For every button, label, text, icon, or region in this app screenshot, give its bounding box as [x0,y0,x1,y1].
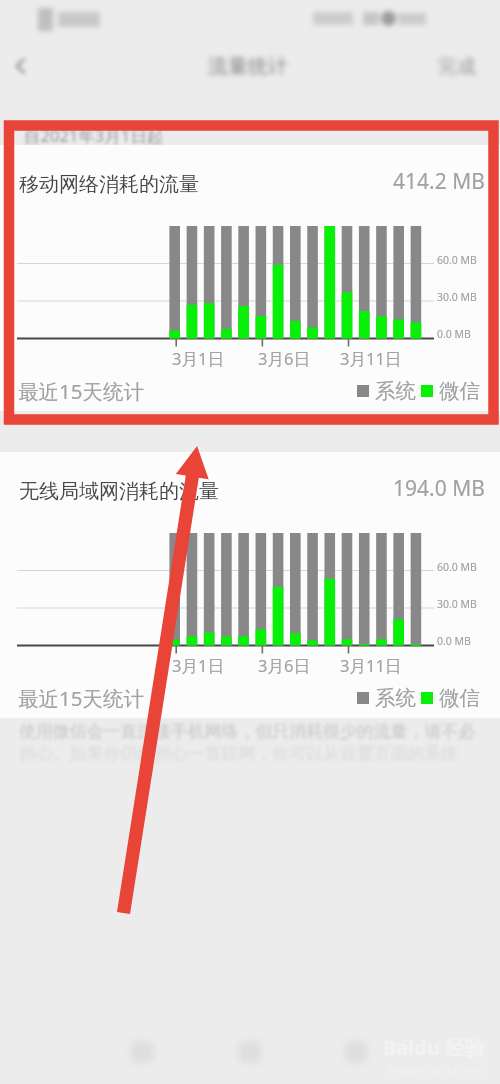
button[interactable]: 无线局域网消耗的流量 [0,452,500,718]
button[interactable]: Back [122,1032,162,1072]
staticText: 3月1日 [172,654,224,677]
staticText: 微信 [439,685,480,711]
staticText: 最近15天统计 [18,684,144,712]
staticText: 414.2 MB [393,167,485,196]
staticText: 30.0 MB [437,290,477,304]
staticText: 30.0 MB [437,597,477,611]
staticText: 自2021年3月1日起 [24,124,164,147]
staticText: 系统 [375,378,416,404]
staticText: 0.0 MB [437,634,471,648]
button[interactable]: Back [7,52,35,80]
staticText: 3月11日 [340,654,402,677]
staticText: 3月1日 [172,347,224,370]
staticText: 194.0 MB [393,474,485,503]
staticText: 无线局域网消耗的流量 [19,479,219,504]
staticText: 使用微信会一直连接手机网络，但只消耗很少的流量，请不必 [19,721,476,742]
staticText: 流量统计 [208,54,288,79]
staticText: 担心。如果你仍然担心一直联网，你可以从设置页面的系统 [19,743,459,764]
staticText: 微信 [439,378,480,404]
button[interactable]: Done [434,50,480,84]
staticText: 3月6日 [258,347,310,370]
staticText: 系统 [375,685,416,711]
staticText: 移动网络消耗的流量 [19,172,199,197]
button[interactable]: 移动网络消耗的流量 [0,145,500,411]
button[interactable]: Home [230,1032,270,1072]
staticText: 3月11日 [340,347,402,370]
staticText: 最近15天统计 [18,377,144,405]
staticText: 0.0 MB [437,327,471,341]
staticText: 3月6日 [258,654,310,677]
staticText: 完成 [438,55,476,79]
staticText: 60.0 MB [437,253,477,267]
button[interactable]: Recents [336,1032,376,1072]
staticText: 60.0 MB [437,560,477,574]
